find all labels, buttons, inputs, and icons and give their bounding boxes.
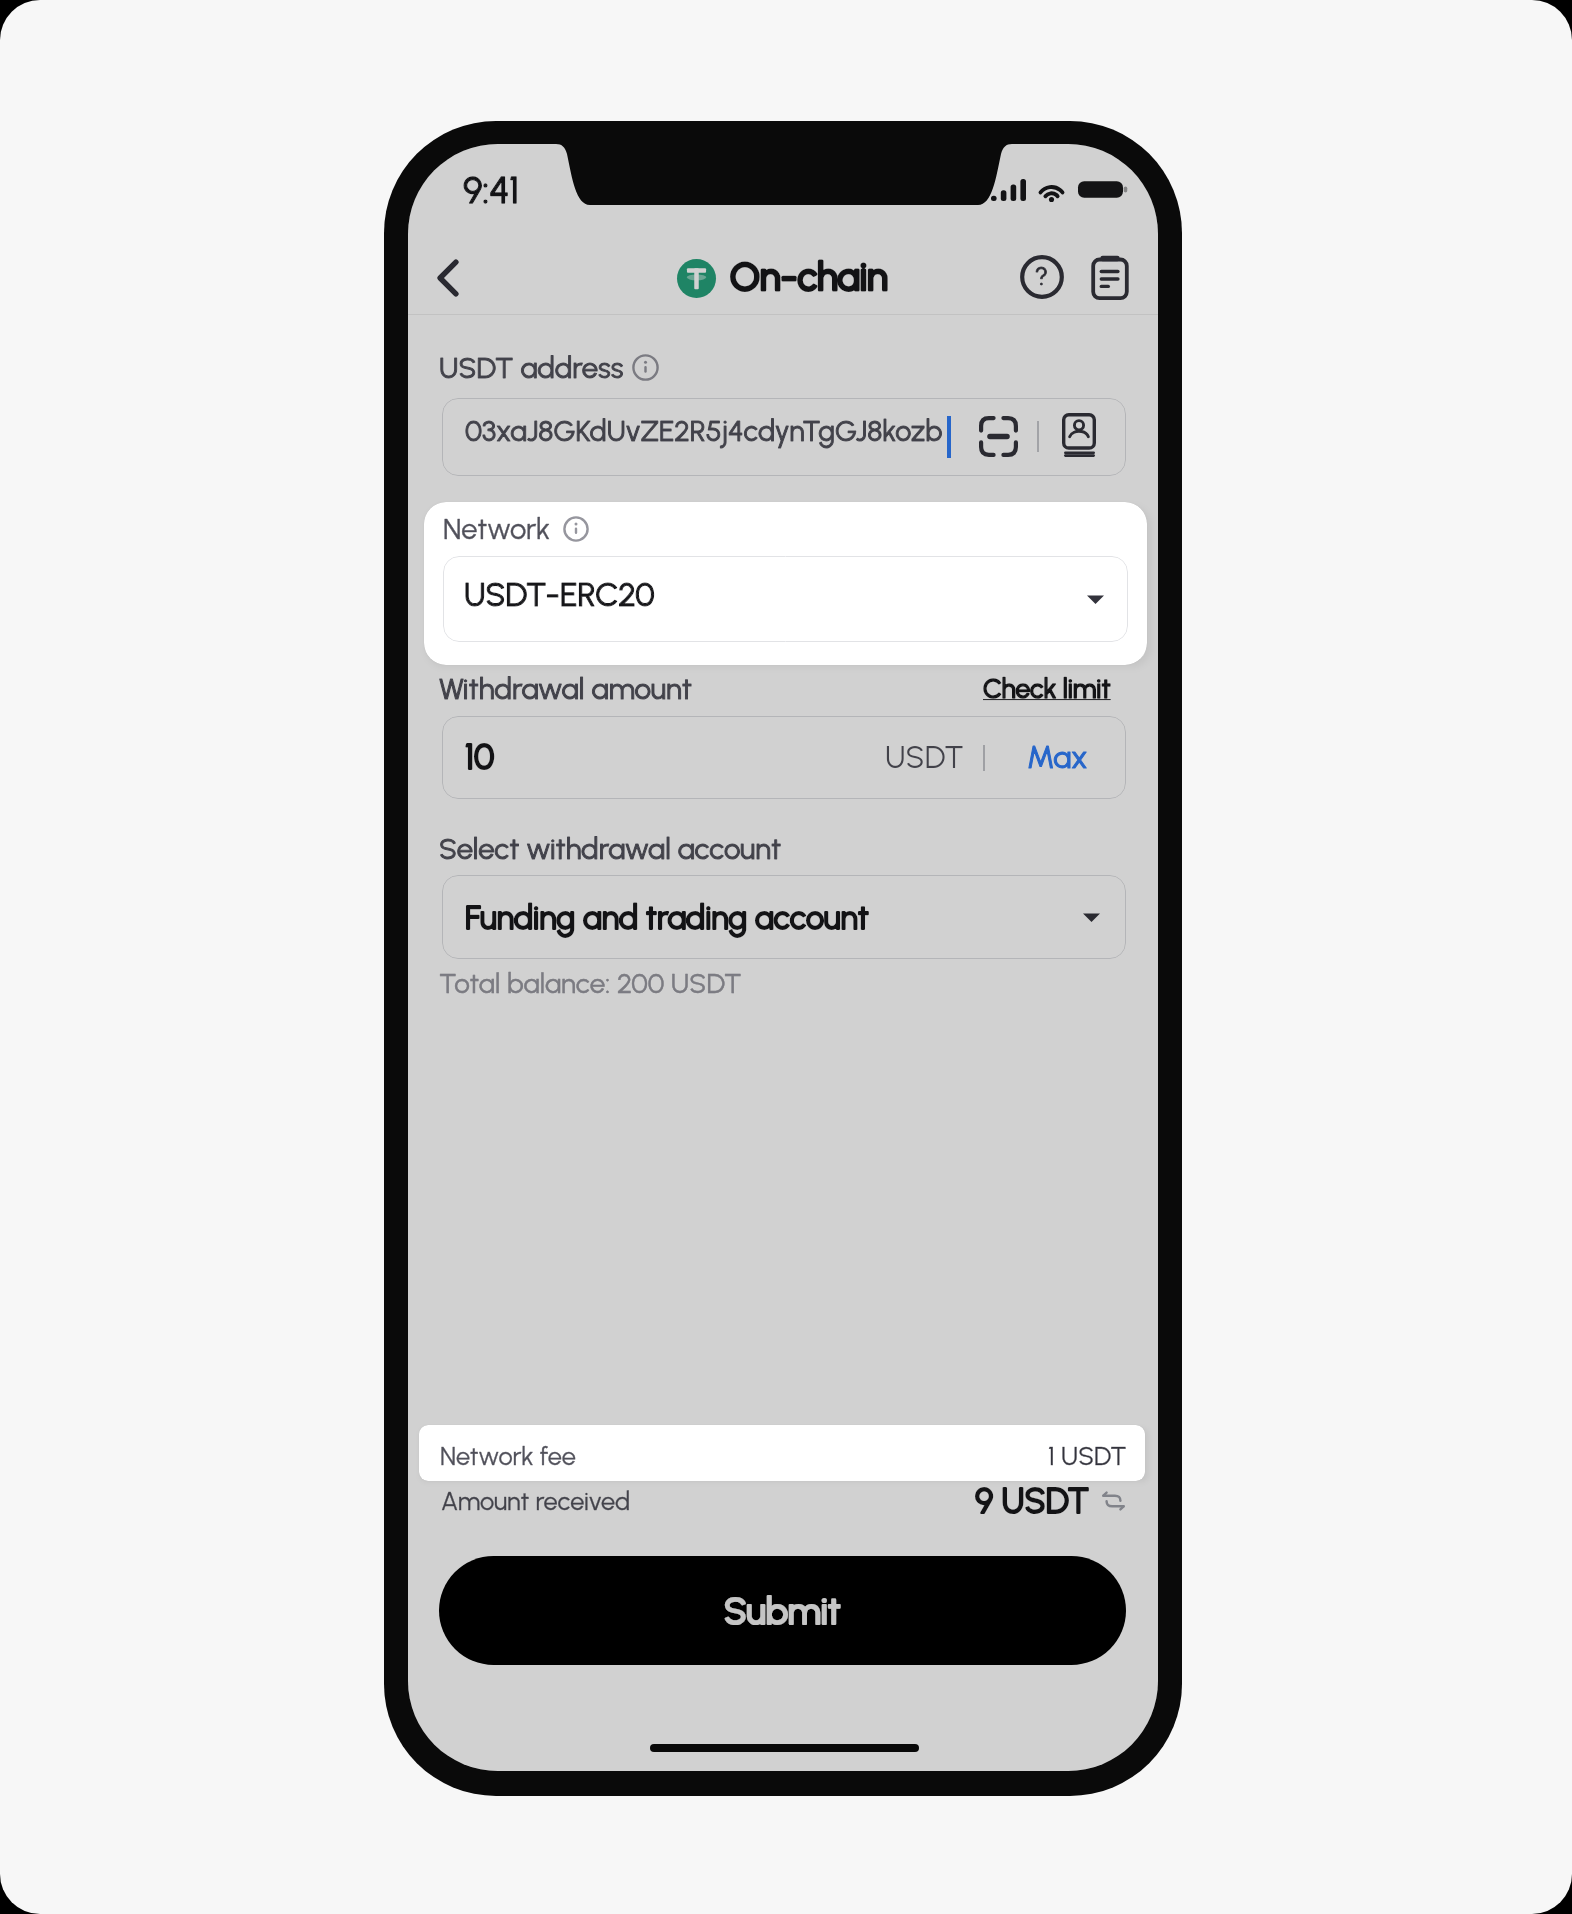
staticText: USDT address: [439, 350, 624, 385]
staticText: Withdrawal amount: [439, 671, 693, 706]
button[interactable]: Max: [1027, 739, 1088, 776]
staticText: 03xaJ8GKdUvZE2R5j4cdynTgGJ8kozb: [465, 414, 943, 448]
staticText: Submit: [724, 1589, 841, 1633]
staticText: Network fee: [440, 1441, 576, 1471]
staticText: Select withdrawal account: [439, 831, 782, 866]
button[interactable]: USDT-ERC20: [443, 556, 1128, 642]
staticText: Network: [443, 511, 551, 546]
staticText: Withdrawal amount: [439, 671, 693, 706]
staticText: USDT-ERC20: [464, 575, 655, 614]
staticText: Check limit: [983, 673, 1111, 705]
staticText: Check limit: [983, 673, 1111, 705]
staticText: Funding and trading account: [465, 898, 869, 937]
staticText: Total balance: 200 USDT: [439, 967, 742, 1000]
staticText: 10: [465, 737, 495, 778]
button[interactable]: Address book: [1054, 409, 1104, 459]
staticText: On-chain: [730, 253, 888, 299]
staticText: Max: [1027, 739, 1088, 776]
staticText: Amount received: [441, 1486, 631, 1516]
staticText: 9 USDT: [975, 1480, 1090, 1522]
staticText: Submit: [724, 1589, 841, 1633]
staticText: Network fee: [440, 1441, 576, 1471]
button[interactable]: Submit: [439, 1556, 1126, 1665]
button[interactable]: Check limit: [983, 673, 1111, 705]
button[interactable]: Scan QR code: [971, 409, 1025, 463]
staticText: Network fee: [441, 1436, 577, 1466]
staticText: Select withdrawal account: [439, 831, 782, 866]
staticText: USDT address: [439, 350, 624, 385]
staticText: 03xaJ8GKdUvZE2R5j4cdynTgGJ8kozb: [465, 414, 943, 448]
button[interactable]: Funding and trading account: [442, 875, 1126, 959]
staticText: ?: [1035, 260, 1049, 291]
staticText: Total balance: 200 USDT: [439, 967, 742, 1000]
staticText: USDT-ERC20: [464, 575, 655, 614]
button[interactable]: Transaction records: [1080, 247, 1140, 307]
staticText: Amount received: [441, 1486, 631, 1516]
staticText: On-chain: [730, 253, 888, 299]
staticText: USDT: [885, 739, 964, 776]
staticText: 9:41: [463, 168, 520, 212]
staticText: 1 USDT: [1048, 1440, 1127, 1471]
staticText: 10: [465, 737, 495, 778]
staticText: Max: [1027, 739, 1088, 776]
staticText: ?: [1035, 260, 1049, 291]
button[interactable]: Back: [418, 248, 478, 308]
staticText: 1 USDT: [1046, 1435, 1125, 1466]
staticText: Network: [439, 510, 547, 545]
button[interactable]: Network fee: [419, 1425, 1145, 1481]
staticText: Network: [443, 511, 551, 546]
staticText: 1 USDT: [1048, 1440, 1127, 1471]
staticText: Funding and trading account: [465, 898, 869, 937]
staticText: 9 USDT: [975, 1480, 1090, 1522]
staticText: 1 USDT: [1046, 1435, 1125, 1466]
staticText: 9:41: [463, 168, 520, 212]
staticText: Network: [439, 510, 547, 545]
button[interactable]: Help: [1012, 247, 1072, 307]
staticText: Network fee: [441, 1436, 577, 1466]
